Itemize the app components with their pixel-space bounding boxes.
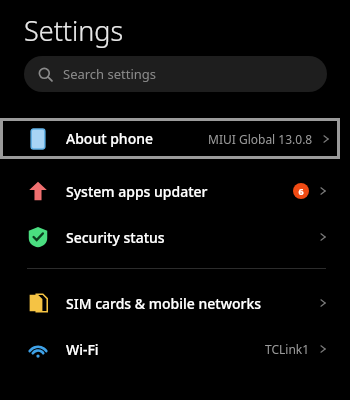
- button[interactable]: System apps updater: [0, 168, 350, 214]
- other: About phone: [27, 128, 49, 150]
- button[interactable]: SIM cards and mobile networks: [0, 280, 350, 326]
- staticText: Search settings: [63, 65, 157, 83]
- staticText: 6: [298, 185, 304, 197]
- staticText: About phone: [66, 129, 154, 148]
- staticText: Settings: [24, 12, 124, 49]
- staticText: MIUI Global 13.0.8: [208, 131, 313, 147]
- staticText: System apps updater: [66, 182, 208, 201]
- button[interactable]: Wi-Fi: [0, 326, 350, 372]
- button[interactable]: Security status: [0, 214, 350, 260]
- other: Wi-Fi: [27, 338, 49, 360]
- staticText: TCLink1: [265, 341, 310, 357]
- button[interactable]: Search settings: [24, 56, 327, 92]
- other: SIM cards and mobile networks: [27, 292, 49, 314]
- staticText: Security status: [66, 228, 165, 247]
- staticText: SIM cards & mobile networks: [66, 294, 262, 313]
- button[interactable]: About phone: [0, 118, 340, 159]
- staticText: Wi-Fi: [66, 340, 99, 359]
- other: System apps updater: [27, 180, 49, 202]
- other: Security status: [27, 226, 49, 248]
